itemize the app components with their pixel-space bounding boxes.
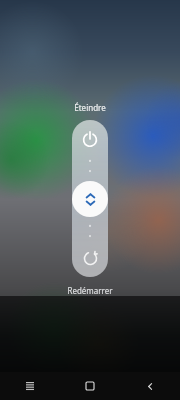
- button[interactable]: Plus d'options: [72, 181, 108, 217]
- button[interactable]: Redémarrer: [75, 243, 105, 273]
- button[interactable]: Back: [120, 372, 180, 400]
- staticText: Redémarrer: [67, 285, 113, 296]
- staticText: Éteindre: [74, 102, 106, 113]
- button[interactable]: Éteindre: [75, 124, 105, 154]
- button[interactable]: Recents: [0, 372, 60, 400]
- button[interactable]: Home: [60, 372, 120, 400]
